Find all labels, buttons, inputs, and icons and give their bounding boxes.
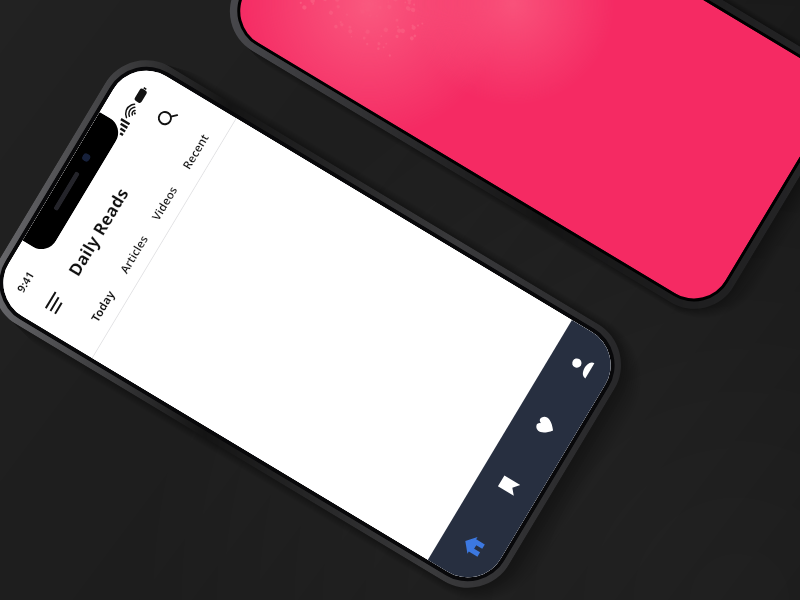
button[interactable]: Search	[144, 96, 188, 140]
button[interactable]: Home	[428, 500, 517, 592]
button[interactable]: Today	[73, 272, 133, 341]
staticText: 9:41	[13, 268, 37, 295]
staticText: Articles	[116, 232, 152, 277]
staticText: Videos	[148, 183, 181, 224]
button[interactable]: Recent	[166, 118, 226, 186]
button[interactable]: Bookmarks	[464, 440, 553, 532]
button[interactable]: Favorites	[500, 380, 589, 472]
button[interactable]: Profile	[536, 320, 625, 412]
staticText: Today	[87, 288, 118, 325]
staticText: Recent	[179, 131, 213, 172]
button[interactable]: Videos	[135, 169, 195, 238]
staticText: Daily Reads	[63, 183, 133, 280]
button[interactable]: Articles	[104, 220, 164, 289]
button[interactable]: Open navigation menu	[38, 276, 79, 318]
